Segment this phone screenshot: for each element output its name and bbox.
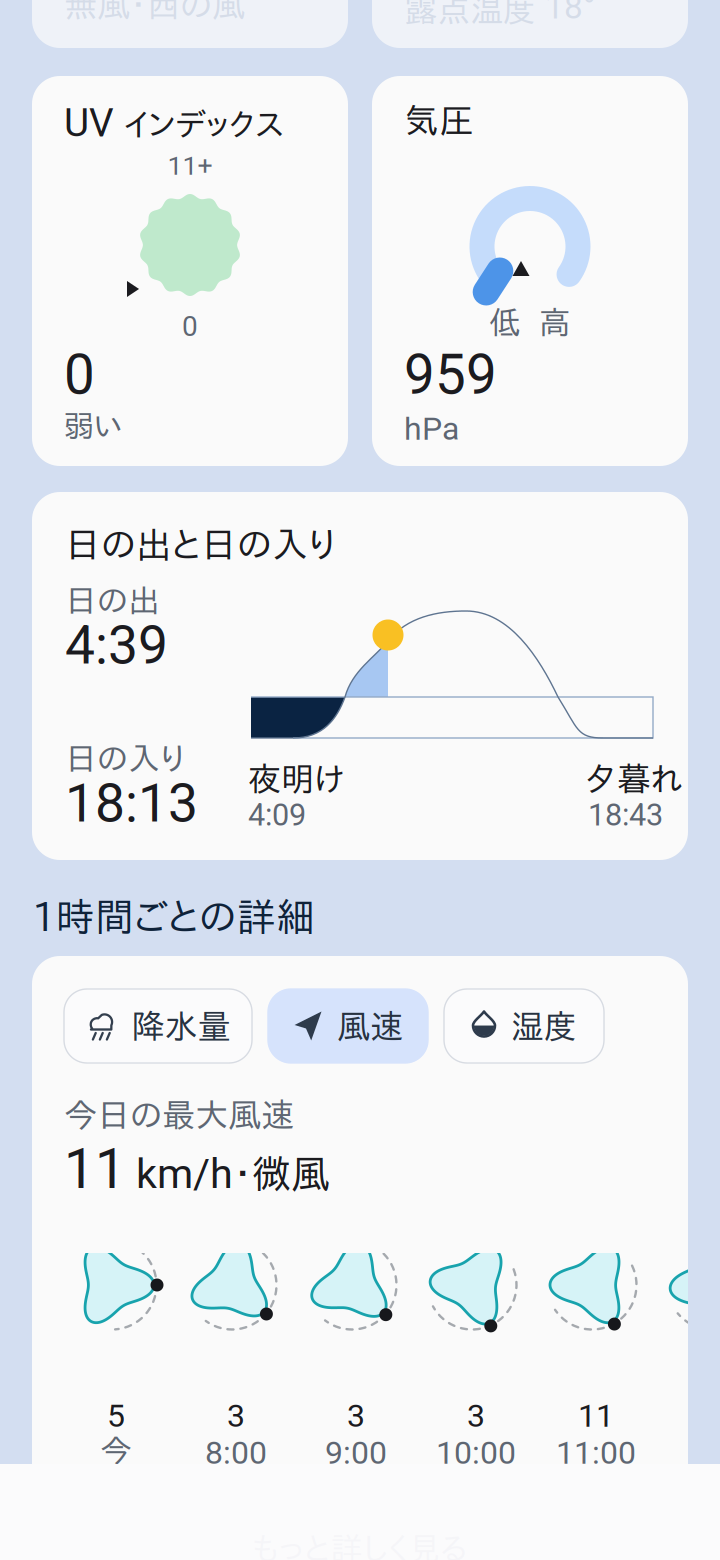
staticText: 低 bbox=[489, 306, 521, 338]
staticText: 降水量 bbox=[131, 1009, 230, 1043]
staticText: 4:09 bbox=[248, 797, 306, 833]
staticText: 18:43 bbox=[588, 797, 663, 833]
staticText: 気圧 bbox=[404, 103, 474, 138]
button[interactable]: 降水量 bbox=[64, 989, 252, 1063]
button[interactable]: 風速 bbox=[268, 989, 428, 1063]
staticText: 18:13 bbox=[65, 772, 198, 834]
staticText: 11 km/h・微風 bbox=[64, 1138, 330, 1200]
staticText: 高 bbox=[539, 306, 571, 338]
staticText: 湿度 bbox=[511, 1009, 577, 1043]
staticText: 今日の最大風速 bbox=[64, 1098, 294, 1131]
staticText: 11+ bbox=[167, 150, 212, 181]
staticText: 無風・西の風 bbox=[64, 0, 245, 21]
staticText: 日の出と日の入り bbox=[65, 526, 336, 562]
staticText: 11:00 bbox=[556, 1434, 636, 1471]
staticText: 夜明け bbox=[248, 762, 344, 795]
staticText: 夕暮れ bbox=[584, 762, 683, 795]
staticText: UV インデックス bbox=[64, 101, 284, 145]
staticText: 5 bbox=[107, 1397, 125, 1434]
staticText: 3 bbox=[227, 1397, 245, 1434]
staticText: 8:00 bbox=[205, 1434, 267, 1471]
staticText: 4:39 bbox=[65, 614, 168, 676]
staticText: 10:00 bbox=[436, 1434, 516, 1471]
staticText: hPa bbox=[404, 410, 459, 447]
staticText: 3 bbox=[347, 1397, 365, 1434]
staticText: 9:00 bbox=[325, 1434, 387, 1471]
staticText: 0 bbox=[182, 310, 198, 343]
staticText: 今 bbox=[100, 1434, 132, 1466]
staticText: 露点温度 18° bbox=[404, 0, 595, 26]
button[interactable]: 湿度 bbox=[444, 989, 604, 1063]
staticText: 日の入り bbox=[65, 742, 185, 774]
staticText: 11 bbox=[578, 1397, 614, 1434]
staticText: 日の出 bbox=[65, 584, 160, 616]
staticText: 959 bbox=[404, 343, 497, 407]
staticText: 風速 bbox=[337, 1009, 403, 1043]
staticText: 0 bbox=[64, 343, 95, 407]
staticText: 1時間ごとの詳細 bbox=[32, 897, 315, 936]
staticText: 弱い bbox=[63, 410, 123, 441]
staticText: 3 bbox=[467, 1397, 485, 1434]
